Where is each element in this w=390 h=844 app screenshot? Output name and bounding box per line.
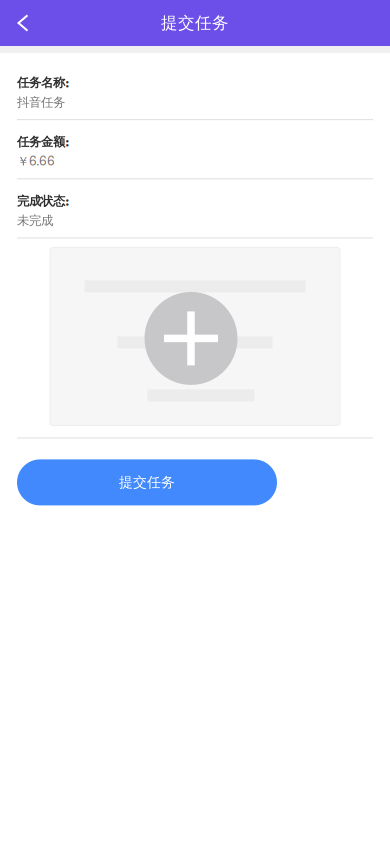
button[interactable]: Back: [0, 0, 46, 46]
staticText: 抖音任务: [17, 94, 65, 110]
staticText: 未完成: [17, 213, 53, 228]
staticText: 任务名称:: [17, 75, 70, 90]
button[interactable]: Upload task screenshot: [50, 247, 340, 425]
button[interactable]: 提交任务: [17, 459, 277, 505]
staticText: 完成状态:: [17, 193, 70, 209]
staticText: 任务金额:: [17, 134, 70, 150]
staticText: 提交任务: [161, 13, 229, 33]
staticText: ￥6.66: [17, 154, 55, 169]
staticText: 提交任务: [119, 474, 175, 491]
